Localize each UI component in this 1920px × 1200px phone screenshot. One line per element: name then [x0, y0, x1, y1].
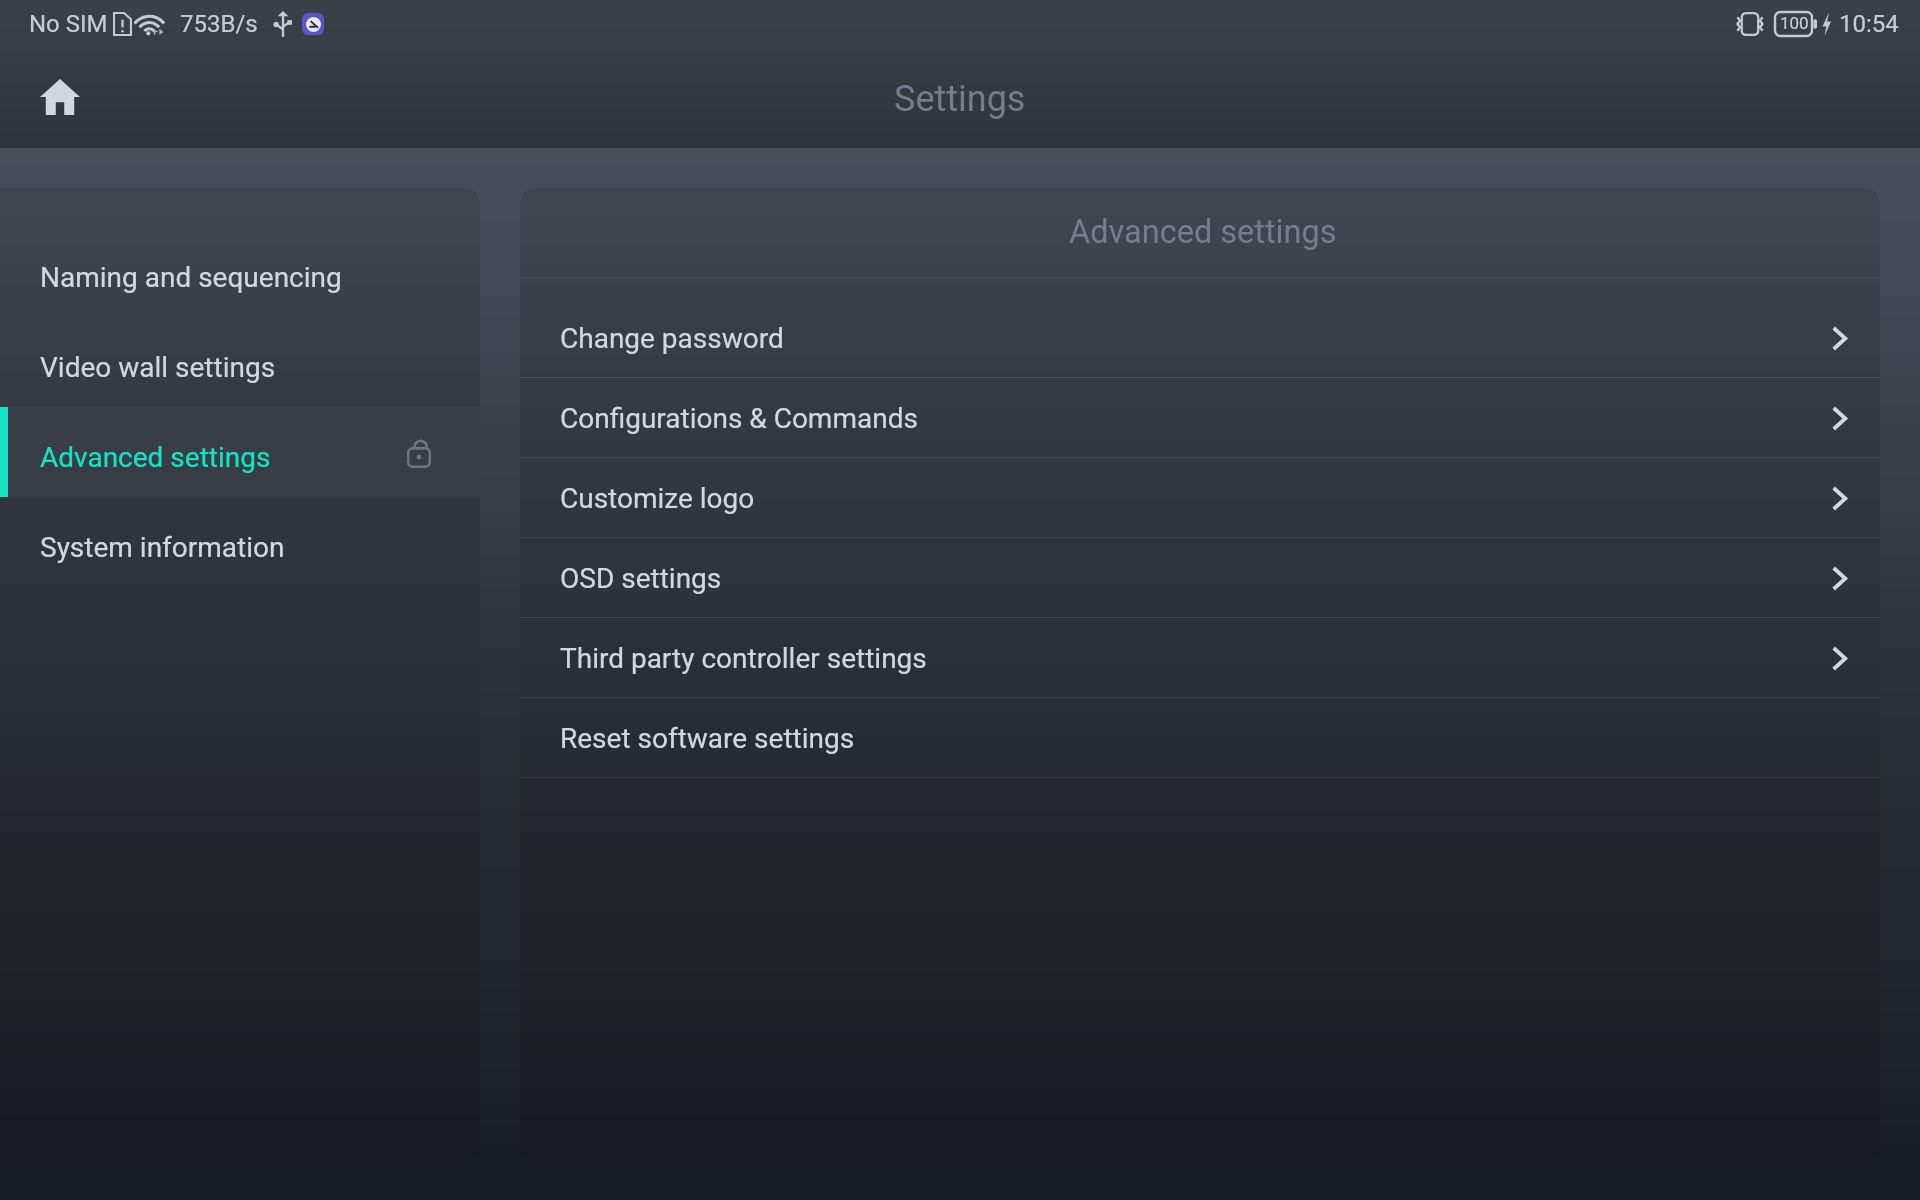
staticText: Advanced settings	[1069, 213, 1337, 251]
staticText: Reset software settings	[560, 722, 855, 755]
staticText: 100	[1780, 13, 1809, 33]
staticText: OSD settings	[560, 562, 722, 595]
staticText: System information	[40, 531, 285, 564]
button[interactable]: Video wall settings	[0, 322, 480, 412]
staticText: 10:54	[1839, 10, 1899, 38]
staticText: 753B/s	[180, 10, 258, 38]
staticText: Video wall settings	[40, 351, 276, 384]
button[interactable]: Naming and sequencing	[0, 232, 480, 322]
staticText: Naming and sequencing	[40, 261, 342, 294]
staticText: Advanced settings	[40, 441, 271, 474]
button[interactable]: Configurations & Commands	[520, 378, 1880, 458]
staticText: Settings	[894, 78, 1026, 120]
button[interactable]: Home	[20, 57, 100, 137]
staticText: Configurations & Commands	[560, 402, 918, 435]
staticText: Change password	[560, 322, 784, 355]
button[interactable]: OSD settings	[520, 538, 1880, 618]
button[interactable]: Advanced settings	[0, 412, 480, 502]
staticText: No SIM	[29, 10, 108, 38]
button[interactable]: Change password	[520, 298, 1880, 378]
button[interactable]: Customize logo	[520, 458, 1880, 538]
button[interactable]: System information	[0, 502, 480, 592]
button[interactable]: Third party controller settings	[520, 618, 1880, 698]
button[interactable]: Reset software settings	[520, 698, 1880, 778]
staticText: Customize logo	[560, 482, 755, 515]
staticText: Third party controller settings	[560, 642, 927, 675]
